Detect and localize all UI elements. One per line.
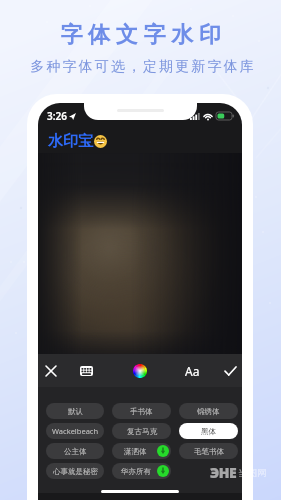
button[interactable]: Confirm [218,359,242,383]
staticText: 手书体 [130,407,153,416]
staticText: 华亦所有 [121,467,151,476]
button[interactable]: Colour [128,359,152,383]
staticText: 心事就是秘密 [53,467,98,476]
staticText: 锦绣体 [197,407,220,416]
button[interactable]: Keyboard [74,359,98,383]
staticText: 黑体 [201,427,216,436]
staticText: ЭHE [210,463,237,482]
staticText: 复古马克 [127,427,157,436]
button[interactable]: 锦绣体 [179,403,238,419]
staticText: 多种字体可选，定期更新字体库 [30,58,256,76]
button[interactable]: 毛笔书体 [179,443,238,459]
button[interactable]: Cancel [39,359,63,383]
button[interactable]: 黑体 [179,423,238,439]
staticText: 潇洒体 [124,447,147,456]
button[interactable]: 手书体 [112,403,171,419]
button[interactable]: 潇洒体 [112,443,171,459]
staticText: 3:26 [47,109,67,123]
button[interactable]: 华亦所有 [112,463,171,479]
staticText: 当图网 [238,467,267,479]
staticText: Wackelbeach [52,426,99,436]
staticText: Aa [185,363,200,379]
button[interactable]: 默认 [46,403,104,419]
button[interactable]: 公主体 [46,443,104,459]
button[interactable]: 心事就是秘密 [46,463,104,479]
staticText: 水印宝 [48,132,93,151]
button[interactable]: Aa [180,359,204,383]
staticText: 字体文字水印 [60,21,227,49]
staticText: 默认 [68,407,83,416]
button[interactable]: 复古马克 [112,423,171,439]
button[interactable]: Wackelbeach [46,423,104,439]
staticText: 公主体 [64,447,87,456]
staticText: 毛笔书体 [194,447,224,456]
